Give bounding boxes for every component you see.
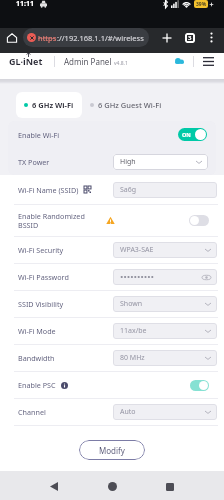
staticText: https	[38, 33, 57, 43]
button[interactable]: New tab	[158, 29, 175, 46]
button[interactable]: Menu	[200, 53, 216, 69]
staticText: 11:11	[16, 0, 34, 9]
button[interactable]: Home	[97, 473, 127, 500]
button[interactable]: Recents	[155, 473, 185, 500]
button[interactable]: Tabs	[181, 29, 198, 46]
button[interactable]: Home	[4, 30, 20, 46]
staticText: Sa6g	[120, 185, 137, 195]
staticText: Auto	[120, 407, 136, 417]
staticText: WPA3-SAE	[120, 245, 154, 255]
staticText: Modify	[99, 445, 125, 456]
staticText: Channel	[18, 407, 46, 417]
staticText: Enable PSC	[18, 380, 56, 390]
button[interactable]: Cloud	[171, 53, 187, 69]
button[interactable]: High	[113, 154, 208, 170]
button[interactable]: Enable PSC toggle	[190, 380, 209, 391]
staticText: Wi-Fi Mode	[18, 326, 56, 336]
staticText: Bandwidth	[18, 353, 55, 363]
button[interactable]: 6 GHz Guest Wi-Fi	[82, 92, 170, 118]
button[interactable]: Enable Wi-Fi toggle	[178, 128, 207, 141]
staticText: TX Power	[18, 157, 50, 167]
button[interactable]: Shown	[113, 296, 217, 312]
button[interactable]: Sa6g	[113, 182, 217, 198]
button[interactable]: Back	[39, 473, 69, 500]
staticText: 80 MHz	[120, 353, 145, 363]
button[interactable]: Auto	[113, 404, 217, 420]
button[interactable]: More options	[203, 29, 220, 46]
staticText: Shown	[120, 299, 143, 309]
button[interactable]	[113, 269, 217, 285]
staticText: Admin Panel	[64, 56, 112, 67]
staticText: Wi-Fi Password	[18, 272, 69, 282]
staticText: Wi-Fi Security	[18, 245, 64, 255]
staticText: Enable Wi-Fi	[18, 130, 60, 140]
staticText: 11ax/be	[120, 326, 147, 336]
button[interactable]: Modify	[79, 440, 145, 460]
staticText: Wi-Fi Name (SSID)	[18, 185, 79, 195]
staticText: v4.8.1	[114, 60, 128, 67]
button[interactable]: Enable Randomized BSSID toggle	[189, 215, 209, 226]
staticText: 6 GHz Wi-Fi	[32, 100, 74, 110]
button[interactable]: 80 MHz	[113, 350, 217, 366]
staticText: ON	[182, 131, 191, 138]
staticText: GL·iNet	[9, 55, 43, 67]
staticText: ://192.168.1.1/#/wireless	[57, 33, 144, 43]
button[interactable]: 11ax/be	[113, 323, 217, 339]
button[interactable]: 6 GHz Wi-Fi	[16, 92, 82, 118]
staticText: 6 GHz Guest Wi-Fi	[98, 100, 162, 110]
staticText: SSID Visibility	[18, 299, 64, 309]
staticText: 39%	[196, 1, 207, 8]
staticText: 3	[188, 34, 192, 42]
staticText: Enable Randomized BSSID	[18, 211, 85, 230]
button[interactable]: https	[23, 28, 149, 47]
staticText: High	[120, 157, 136, 167]
button[interactable]: WPA3-SAE	[113, 242, 217, 258]
